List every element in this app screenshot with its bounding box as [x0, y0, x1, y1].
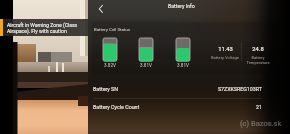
- staticText: 3.82V: [102, 63, 118, 68]
- staticText: Battery Temperature: [246, 55, 270, 65]
- staticText: (c) Bazos.sk: [240, 119, 282, 128]
- staticText: Battery Cycle Count: [93, 104, 140, 110]
- staticText: 3.81V: [138, 63, 154, 68]
- staticText: 24.8: [252, 46, 264, 53]
- staticText: 21: [139, 104, 262, 110]
- staticText: 11.43: [218, 46, 233, 53]
- staticText: Airspace). Fly with caution: [7, 28, 67, 34]
- staticText: 3.81V: [175, 63, 191, 68]
- button[interactable]: Battery Cycle Count: [88, 98, 262, 116]
- staticText: S7ZXKSREG103RT: [118, 86, 262, 92]
- staticText: Aircraft in Warning Zone (Class: [7, 22, 78, 28]
- staticText: Battery Voltage: [211, 55, 239, 60]
- button[interactable]: Battery SN: [88, 80, 262, 98]
- staticText: Battery Info: [168, 3, 195, 9]
- button[interactable]: Aircraft in Warning Zone (Class: [0, 19, 88, 36]
- staticText: Battery Cell Status: [94, 27, 130, 32]
- staticText: Battery SN: [93, 86, 119, 92]
- button[interactable]: Back: [91, 0, 110, 17]
